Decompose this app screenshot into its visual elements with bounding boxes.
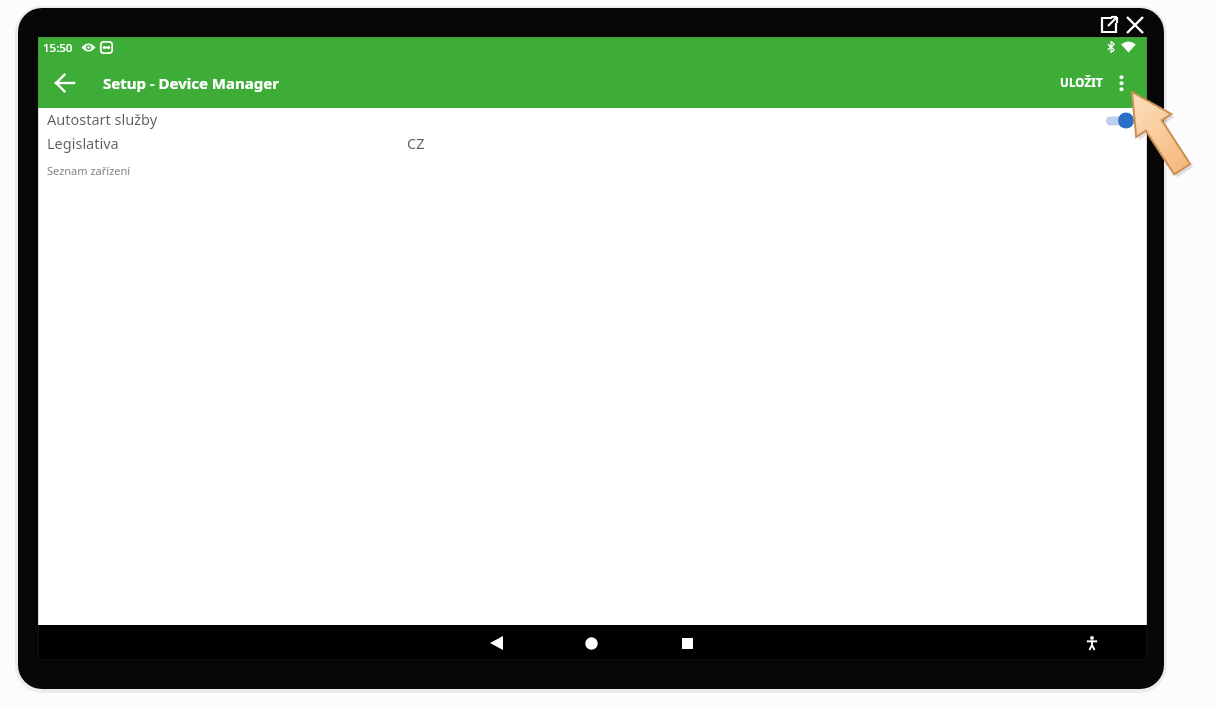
- button[interactable]: Legislativa: [38, 130, 1147, 155]
- button[interactable]: [1100, 16, 1118, 34]
- button[interactable]: [1078, 629, 1106, 656]
- button[interactable]: [482, 630, 510, 656]
- staticText: Setup - Device Manager: [103, 73, 279, 93]
- staticText: Seznam zařízení: [47, 163, 131, 178]
- button[interactable]: Autostart služby: [38, 106, 1147, 132]
- staticText: CZ: [407, 133, 425, 153]
- staticText: ULOŽIT: [1060, 75, 1103, 91]
- staticText: 15:50: [43, 40, 73, 55]
- button[interactable]: [46, 65, 84, 101]
- staticText: Autostart služby: [47, 109, 158, 129]
- button[interactable]: [1126, 16, 1144, 34]
- button[interactable]: [673, 630, 701, 656]
- button[interactable]: ULOŽIT: [1046, 67, 1116, 98]
- button[interactable]: [1110, 67, 1134, 98]
- button[interactable]: [577, 630, 605, 656]
- staticText: Legislativa: [47, 133, 119, 153]
